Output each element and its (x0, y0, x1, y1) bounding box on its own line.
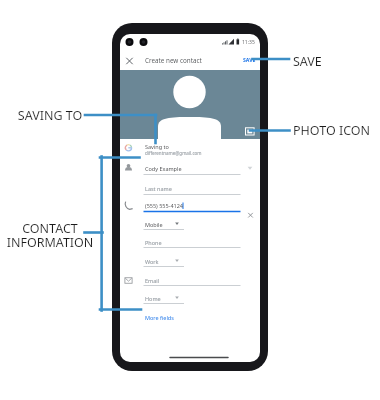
staticText: Last name (145, 185, 172, 192)
staticText: SAVE (293, 53, 322, 70)
staticText: differentname@gmail.com (145, 150, 202, 156)
button[interactable]: Add photo (243, 125, 257, 139)
button[interactable]: Close (123, 55, 136, 68)
staticText: Mobile (145, 221, 163, 228)
staticText: (555) 555-4124 (145, 202, 183, 209)
staticText: More fields (145, 314, 174, 321)
staticText: CONTACT INFORMATION (0, 220, 100, 251)
staticText: Saving to (145, 143, 169, 150)
staticText: Cody Example (145, 165, 182, 172)
staticText: SAVING TO (0, 107, 100, 124)
staticText: 11:35 (242, 39, 255, 46)
staticText: Work (145, 258, 159, 265)
staticText: Phone (145, 239, 162, 246)
button[interactable]: SAVE (243, 56, 256, 63)
staticText: SAVE (243, 56, 256, 63)
staticText: Home (145, 295, 161, 302)
button[interactable]: More fields (145, 314, 174, 321)
staticText: Email (145, 277, 160, 284)
staticText: PHOTO ICON (293, 122, 371, 139)
staticText: Create new contact (145, 56, 202, 65)
